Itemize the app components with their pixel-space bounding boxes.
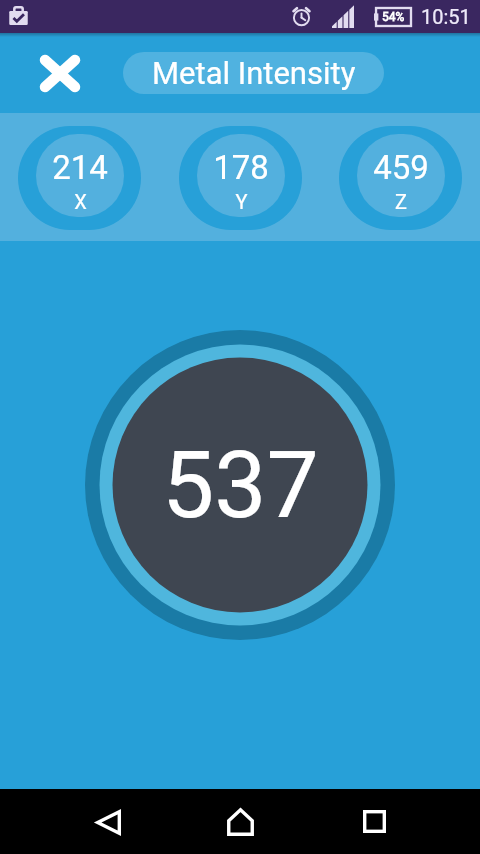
button[interactable]: 459 xyxy=(339,126,462,230)
staticText: 54% xyxy=(382,10,405,24)
staticText: 178 xyxy=(213,148,269,187)
button[interactable]: 178 xyxy=(179,126,302,230)
staticText: 537 xyxy=(162,431,319,540)
staticText: X xyxy=(74,190,87,213)
staticText: Z xyxy=(395,190,407,213)
staticText: 10:51 xyxy=(421,5,471,28)
staticText: 459 xyxy=(373,148,429,187)
staticText: Metal Intensity xyxy=(152,55,356,91)
staticText: Y xyxy=(235,190,248,213)
button[interactable]: Recent apps xyxy=(346,789,402,854)
staticText: 214 xyxy=(52,148,108,187)
button[interactable]: 214 xyxy=(18,126,141,230)
button[interactable]: Close xyxy=(32,45,88,101)
button[interactable]: Metal Intensity xyxy=(123,52,384,94)
button[interactable]: Home xyxy=(212,789,268,854)
button[interactable]: Back xyxy=(80,789,136,854)
button[interactable]: 537 xyxy=(84,329,396,641)
